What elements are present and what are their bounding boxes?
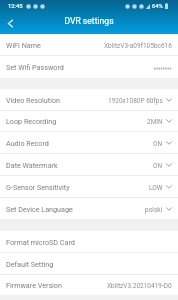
button[interactable]: Format microSD Card: [0, 231, 178, 253]
staticText: Loop Recording: [6, 117, 57, 125]
staticText: ON: [153, 162, 163, 170]
staticText: Set Device Language: [6, 205, 73, 213]
staticText: G-Sensor Sensitivity: [6, 183, 70, 191]
button[interactable]: Default Setting: [0, 253, 178, 275]
staticText: Set Wifi Password: [6, 63, 64, 71]
button[interactable]: Loop Recording: [0, 111, 178, 132]
staticText: XblitzV3.20210419-D0: [107, 282, 172, 290]
staticText: Format microSD Card: [6, 238, 75, 246]
button[interactable]: Audio Record: [0, 132, 178, 154]
button[interactable]: Video Resolution: [0, 89, 178, 111]
staticText: DVR settings: [0, 16, 178, 26]
staticText: Default Setting: [6, 260, 54, 268]
staticText: 1920x1080P 60fps: [108, 97, 163, 105]
button[interactable]: Date Watermark: [0, 154, 178, 176]
staticText: ON: [153, 140, 163, 148]
staticText: Firmware Version: [6, 281, 62, 289]
staticText: polski: [145, 206, 163, 214]
button[interactable]: WiFi Name: [0, 34, 178, 56]
staticText: 64%: [152, 3, 163, 10]
staticText: Audio Record: [6, 139, 49, 147]
staticText: LOW: [149, 184, 163, 192]
button[interactable]: Set Wifi Password: [0, 56, 178, 78]
button[interactable]: Set Device Language: [0, 198, 178, 219]
staticText: Date Watermark: [6, 161, 58, 169]
button[interactable]: Back: [0, 12, 20, 34]
button[interactable]: G-Sensor Sensitivity: [0, 176, 178, 198]
staticText: XblitzV3-a09f105bc616: [104, 42, 172, 50]
staticText: Video Resolution: [6, 96, 60, 104]
button[interactable]: Firmware Version: [0, 275, 178, 295]
staticText: 2MIN: [147, 118, 163, 126]
staticText: WiFi Name: [6, 41, 41, 49]
staticText: 12:45: [8, 3, 23, 10]
